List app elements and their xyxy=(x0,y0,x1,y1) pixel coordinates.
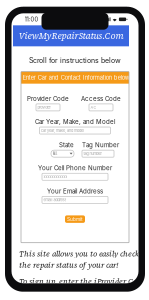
staticText: provider xyxy=(37,105,50,110)
staticText: xxxxxxxxxxxx xyxy=(43,174,67,179)
staticText: car year, make, and model xyxy=(41,128,84,133)
button[interactable]: Submit xyxy=(65,215,85,223)
button[interactable]: AC xyxy=(89,104,113,111)
button[interactable]: provider xyxy=(36,104,60,111)
staticText: Enter Car and Contact Information below xyxy=(23,74,130,81)
staticText: the repair status of your car! xyxy=(19,260,118,270)
staticText: Provider Code xyxy=(27,95,69,102)
staticText: Tag Number xyxy=(82,141,119,149)
button[interactable]: tag number xyxy=(82,150,114,157)
staticText: AC xyxy=(90,105,96,110)
staticText: Scroll for instructions below xyxy=(29,56,121,65)
staticText: State xyxy=(59,141,74,149)
staticText: ViewMyRepairStatus.Com xyxy=(18,30,123,42)
staticText: AL xyxy=(53,151,58,156)
staticText: Your Email Address xyxy=(47,187,103,195)
staticText: 11:00 xyxy=(24,16,38,23)
staticText: tag number xyxy=(83,151,101,156)
button[interactable]: AL xyxy=(51,150,74,157)
staticText: email address xyxy=(43,198,66,202)
staticText: Car Year, Make, and Model xyxy=(35,118,115,125)
staticText: Access Code xyxy=(81,95,121,102)
button[interactable]: xxxxxxxxxxxx xyxy=(42,173,108,180)
staticText: Your Cell Phone Number xyxy=(38,164,112,172)
staticText: Submit xyxy=(67,216,83,222)
button[interactable]: car year, make, and model xyxy=(39,127,110,134)
staticText: To sign up, enter the iProvider Code xyxy=(19,276,145,286)
button[interactable]: email address xyxy=(42,196,108,203)
staticText: This site allows you to easily check on xyxy=(19,249,149,259)
